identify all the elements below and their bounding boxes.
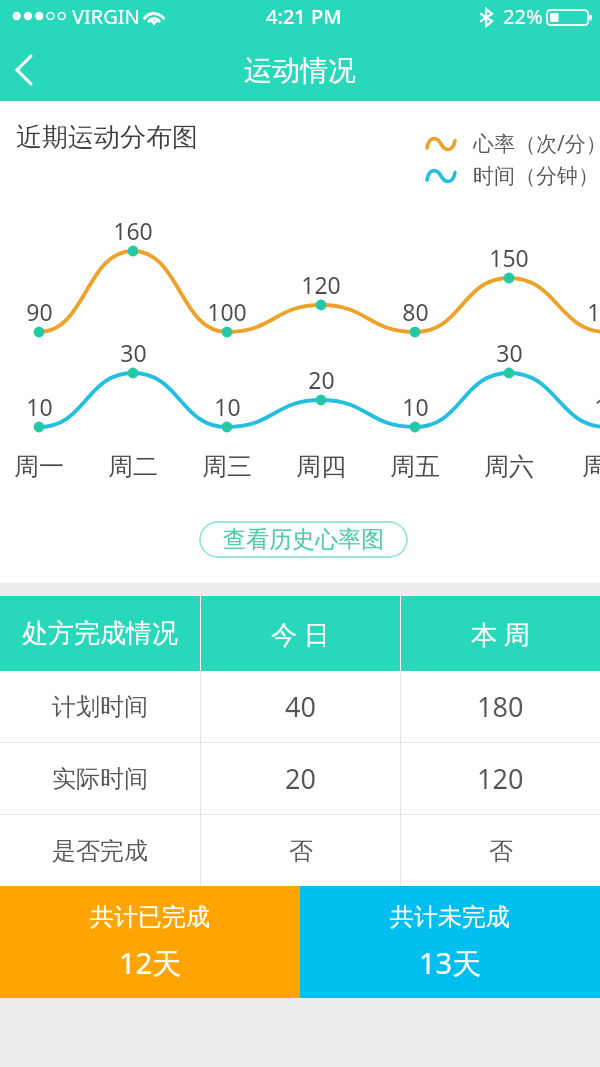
staticText: 40 (285, 688, 316, 725)
staticText: 120 (477, 760, 524, 797)
staticText: 100 (587, 296, 600, 327)
staticText: 10 (26, 391, 53, 422)
staticText: 周六 (484, 451, 534, 482)
staticText: 共计未完成 (390, 902, 510, 932)
staticText: 周日 (582, 451, 600, 482)
staticText: 90 (26, 296, 53, 327)
staticText: 120 (301, 269, 341, 300)
staticText: 处方完成情况 (22, 617, 178, 650)
button[interactable]: 共计已完成 (0, 886, 300, 998)
button[interactable]: 今 日 (201, 596, 400, 671)
staticText: 心率（次/分） (473, 129, 600, 158)
staticText: 实际时间 (52, 764, 148, 794)
button[interactable]: 本 周 (401, 596, 600, 671)
staticText: 本 周 (471, 616, 530, 652)
button[interactable]: 实际时间 (0, 743, 600, 814)
staticText: 运动情况 (244, 53, 356, 88)
staticText: 10 (402, 391, 429, 422)
staticText: 周四 (296, 451, 346, 482)
staticText: 4:21 PM (266, 3, 342, 30)
staticText: 150 (489, 242, 529, 273)
button[interactable]: 共计未完成 (300, 886, 600, 998)
staticText: 10 (214, 391, 241, 422)
staticText: 180 (477, 688, 524, 725)
staticText: 否 (489, 836, 513, 866)
staticText: 周二 (108, 451, 158, 482)
button[interactable]: 处方完成情况 (0, 596, 200, 671)
staticText: 近期运动分布图 (16, 121, 198, 154)
staticText: 30 (496, 337, 523, 368)
staticText: 80 (402, 296, 429, 327)
staticText: 是否完成 (52, 836, 148, 866)
staticText: 12天 (119, 943, 182, 983)
staticText: 周一 (14, 451, 64, 482)
staticText: 10 (594, 391, 600, 422)
staticText: VIRGIN (72, 3, 140, 30)
staticText: 160 (113, 215, 153, 246)
staticText: 13天 (419, 943, 482, 983)
button[interactable]: Back (0, 46, 48, 100)
staticText: 30 (120, 337, 147, 368)
staticText: 20 (308, 364, 335, 395)
staticText: 周三 (202, 451, 252, 482)
staticText: 今 日 (271, 616, 330, 652)
staticText: 100 (207, 296, 247, 327)
staticText: 时间（分钟） (473, 163, 599, 189)
staticText: 查看历史心率图 (223, 525, 384, 554)
button[interactable]: 计划时间 (0, 671, 600, 742)
staticText: 22% (503, 3, 543, 30)
staticText: 否 (289, 836, 313, 866)
staticText: 共计已完成 (90, 902, 210, 932)
staticText: 计划时间 (52, 692, 148, 722)
button[interactable]: 是否完成 (0, 815, 600, 886)
staticText: 周五 (390, 451, 440, 482)
staticText: 20 (285, 760, 316, 797)
button[interactable]: 查看历史心率图 (199, 521, 408, 558)
